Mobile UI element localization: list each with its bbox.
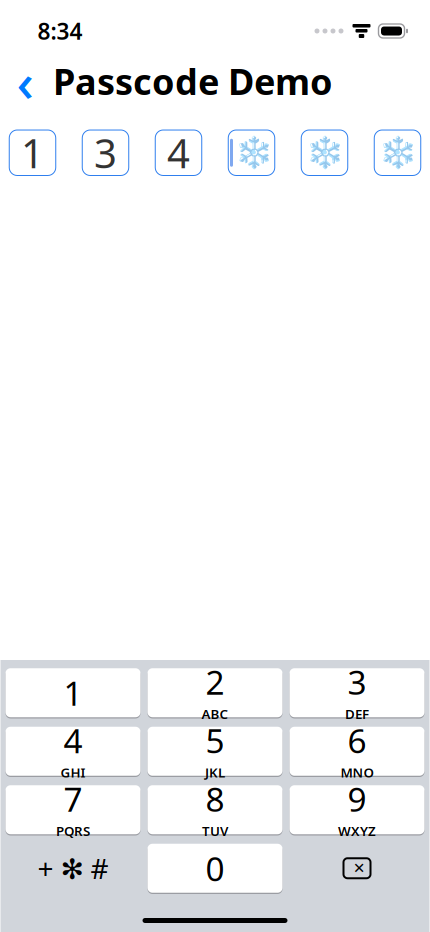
button[interactable]: + ✻ #	[5, 843, 140, 894]
staticText: TUV	[202, 822, 228, 840]
staticText: ABC	[201, 705, 228, 723]
staticText: 6	[347, 718, 366, 763]
staticText: PQRS	[56, 822, 90, 840]
button[interactable]: 7	[5, 784, 140, 835]
staticText: DEF	[345, 705, 369, 723]
staticText: 1	[63, 671, 82, 715]
button[interactable]: 8	[147, 784, 282, 835]
staticText: ✕	[353, 860, 365, 876]
staticText: WXYZ	[338, 822, 376, 840]
staticText: ❄️	[378, 135, 416, 170]
staticText: ❄️	[235, 135, 273, 170]
staticText: 3	[347, 660, 366, 704]
staticText: GHI	[60, 763, 85, 781]
staticText: 7	[63, 777, 82, 821]
staticText: 2	[205, 660, 224, 704]
staticText: 9	[347, 777, 366, 821]
staticText: 3	[94, 126, 117, 179]
staticText: 4	[63, 718, 82, 763]
staticText: 1	[21, 126, 44, 179]
staticText: 5	[205, 718, 224, 763]
staticText: ❄️	[305, 135, 343, 170]
staticText: ‹	[16, 46, 33, 116]
button[interactable]: Back	[8, 59, 42, 103]
staticText: + ✻ #	[37, 850, 108, 887]
staticText: 0	[205, 846, 224, 890]
staticText: 8	[205, 777, 224, 821]
button[interactable]: 9	[289, 784, 424, 835]
button[interactable]: 4	[5, 725, 140, 777]
button[interactable]: 0	[147, 842, 282, 894]
staticText: MNO	[340, 763, 373, 781]
button[interactable]: 2	[147, 667, 282, 718]
button[interactable]: 5	[147, 725, 282, 777]
button[interactable]: Delete	[289, 843, 424, 894]
staticText: 4	[167, 126, 190, 179]
staticText: Passcode Demo	[53, 57, 333, 105]
button[interactable]: 3	[289, 667, 424, 718]
button[interactable]: 6	[289, 725, 424, 777]
staticText: 8:34	[37, 16, 82, 46]
button[interactable]: 1	[5, 667, 140, 718]
staticText: JKL	[205, 763, 225, 781]
